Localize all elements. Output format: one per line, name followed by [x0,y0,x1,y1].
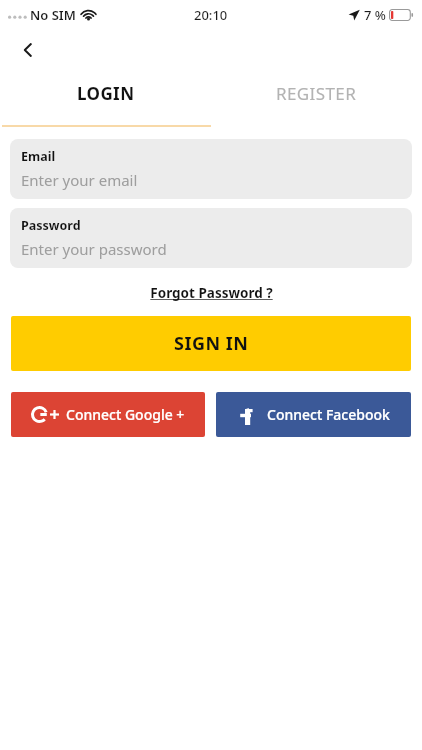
staticText: 7 % [364,6,386,24]
button[interactable]: REGISTER [211,70,422,116]
staticText: Enter your password [21,239,167,259]
button[interactable]: Password [10,208,412,268]
staticText: Connect Google + [66,405,185,424]
staticText: Enter your email [21,170,138,190]
staticText: LOGIN [77,82,135,105]
button[interactable]: Email [10,139,412,199]
button[interactable]: Connect Google + [11,392,205,437]
staticText: SIGN IN [174,331,249,356]
button[interactable]: Forgot Password ? [144,282,279,304]
button[interactable]: Back [12,34,44,66]
button[interactable]: SIGN IN [11,316,411,371]
staticText: Email [21,148,56,165]
button[interactable]: LOGIN [0,70,211,116]
staticText: REGISTER [276,82,357,105]
staticText: Password [21,217,81,234]
staticText: Forgot Password ? [150,284,273,302]
staticText: No SIM [30,6,76,24]
button[interactable]: Connect Facebook [216,392,411,437]
staticText: 20:10 [194,6,228,24]
staticText: Connect Facebook [267,405,390,424]
